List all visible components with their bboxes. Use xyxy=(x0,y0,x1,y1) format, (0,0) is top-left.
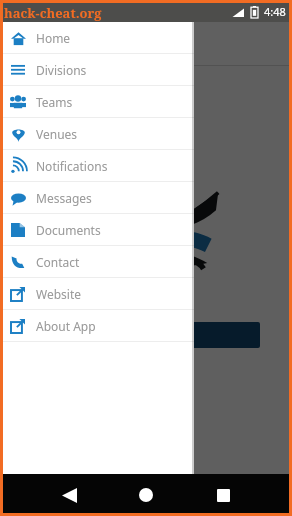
button[interactable]: Teams xyxy=(0,86,194,117)
staticText: Venues xyxy=(36,126,78,142)
button[interactable]: Website xyxy=(0,278,194,309)
button[interactable]: Home xyxy=(131,480,161,510)
staticText: Contact xyxy=(36,254,80,270)
staticText: Documents xyxy=(36,222,101,238)
button[interactable] xyxy=(168,322,260,348)
staticText: 4:48 xyxy=(264,4,286,19)
staticText: Messages xyxy=(36,190,92,206)
staticText: Website xyxy=(36,286,82,302)
button[interactable]: Home xyxy=(0,22,194,53)
staticText: hack-cheat.org xyxy=(4,4,102,22)
button[interactable]: About App xyxy=(0,310,194,341)
button[interactable]: Contact xyxy=(0,246,194,277)
button[interactable]: Documents xyxy=(0,214,194,245)
button[interactable]: Divisions xyxy=(0,54,194,85)
staticText: About App xyxy=(36,318,96,334)
button[interactable]: Back xyxy=(54,480,84,510)
staticText: Home xyxy=(36,30,71,46)
button[interactable]: Messages xyxy=(0,182,194,213)
button[interactable]: Recents xyxy=(208,480,238,510)
staticText: 4:48 xyxy=(264,4,286,19)
staticText: Tournament xyxy=(56,33,149,55)
staticText: Divisions xyxy=(36,62,87,78)
staticText: Teams xyxy=(36,94,73,110)
button[interactable]: Notifications xyxy=(0,150,194,181)
staticText: Notifications xyxy=(36,158,108,174)
button[interactable]: Venues xyxy=(0,118,194,149)
